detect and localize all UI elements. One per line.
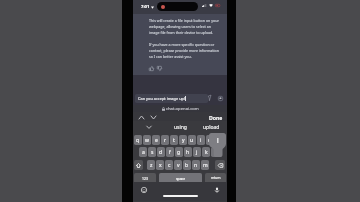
staticText: x	[159, 162, 162, 169]
staticText: d	[159, 149, 163, 156]
staticText: m	[203, 162, 208, 169]
button[interactable]: Thumbs down	[157, 66, 162, 71]
button[interactable]: p	[215, 135, 223, 145]
button[interactable]: l	[211, 147, 219, 157]
button[interactable]: using	[165, 121, 196, 133]
button[interactable]: c	[165, 160, 173, 170]
button[interactable]: v	[174, 160, 182, 170]
button[interactable]: k	[202, 147, 210, 157]
staticText: i	[200, 137, 202, 144]
staticText: k	[205, 149, 208, 156]
button[interactable]: Done	[209, 114, 223, 121]
staticText: v	[177, 162, 180, 169]
button[interactable]: i	[197, 135, 205, 145]
button[interactable]: Shift	[134, 160, 143, 170]
button[interactable]: t	[170, 135, 178, 145]
button[interactable]: Can you accept image upl	[135, 94, 208, 103]
staticText: t	[173, 137, 175, 144]
button[interactable]: Previous field	[138, 114, 145, 121]
staticText: upload	[203, 124, 220, 131]
staticText: c	[168, 162, 171, 169]
staticText: z	[150, 162, 153, 169]
button[interactable]: u	[188, 135, 196, 145]
staticText: r	[164, 137, 167, 144]
button[interactable]: Next field	[150, 114, 157, 121]
button[interactable]: w	[143, 135, 151, 145]
button[interactable]: o	[206, 135, 214, 145]
button[interactable]: Emoji keyboard	[141, 187, 147, 193]
button[interactable]: 123	[134, 173, 156, 183]
button[interactable]: m	[201, 160, 209, 170]
staticText: using	[174, 124, 187, 131]
staticText: f	[169, 149, 171, 156]
button[interactable]: Thumbs up	[149, 66, 154, 71]
button[interactable]: x	[156, 160, 164, 170]
button[interactable]: s	[148, 147, 156, 157]
button[interactable]: space	[159, 173, 202, 183]
button[interactable]: Emoji suggestion	[133, 121, 165, 133]
staticText: space	[176, 176, 186, 181]
button[interactable]: q	[134, 135, 142, 145]
staticText: g	[177, 149, 181, 156]
button[interactable]: return	[205, 173, 226, 183]
button[interactable]: d	[157, 147, 165, 157]
staticText: q	[136, 137, 140, 144]
staticText: u	[190, 137, 194, 144]
staticText: y	[182, 137, 185, 144]
staticText: 7:01	[141, 4, 150, 10]
staticText: a	[142, 149, 145, 156]
staticText: chat.openai.com	[166, 106, 199, 112]
staticText: Done	[209, 114, 223, 121]
button[interactable]: a	[139, 147, 147, 157]
button[interactable]: b	[183, 160, 191, 170]
staticText: o	[208, 137, 212, 144]
staticText: If you have a more specific question or …	[149, 42, 219, 59]
button[interactable]: r	[161, 135, 169, 145]
staticText: This will create a file input button on …	[149, 18, 219, 35]
staticText: Can you accept image upl	[138, 96, 185, 101]
button[interactable]: Delete	[215, 160, 225, 170]
button[interactable]: Dictation	[214, 187, 220, 193]
staticText: w	[145, 137, 149, 144]
button[interactable]: j	[193, 147, 201, 157]
staticText: l	[217, 136, 219, 145]
staticText: h	[186, 149, 190, 156]
staticText: n	[194, 162, 198, 169]
button[interactable]: h	[184, 147, 192, 157]
staticText: e	[155, 137, 158, 144]
button[interactable]: e	[152, 135, 160, 145]
button[interactable]: n	[192, 160, 200, 170]
staticText: b	[185, 162, 189, 169]
staticText: j	[196, 149, 198, 156]
button[interactable]: g	[175, 147, 183, 157]
staticText: 123	[142, 176, 148, 181]
button[interactable]: upload	[196, 121, 227, 133]
staticText: return	[211, 176, 221, 180]
staticText: p	[217, 137, 221, 144]
button[interactable]: z	[147, 160, 155, 170]
button[interactable]: Chat	[218, 96, 223, 101]
button[interactable]: Send	[208, 95, 211, 101]
button[interactable]: f	[166, 147, 174, 157]
button[interactable]: y	[179, 135, 187, 145]
staticText: s	[151, 149, 154, 156]
